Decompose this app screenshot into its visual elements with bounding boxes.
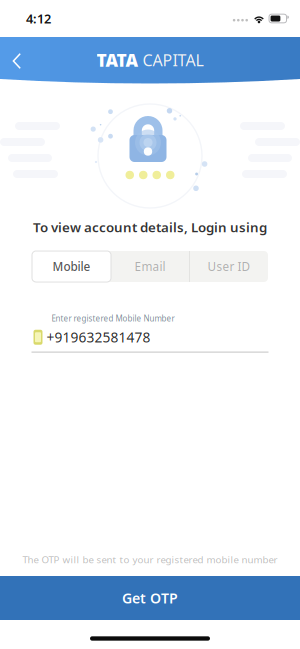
staticText: User ID <box>207 258 250 274</box>
button[interactable]: Mobile <box>32 251 111 282</box>
staticText: 4:12 <box>26 10 51 27</box>
staticText: TATA <box>96 48 138 71</box>
staticText: Mobile <box>52 258 90 274</box>
staticText: To view account details, Login using <box>33 218 267 236</box>
button[interactable]: Email <box>111 251 189 282</box>
button[interactable]: Get OTP <box>0 576 300 620</box>
staticText: Email <box>134 258 165 274</box>
staticText: Get OTP <box>122 588 178 608</box>
staticText: +919632581478 <box>46 328 150 347</box>
staticText: CAPITAL <box>142 49 203 71</box>
button[interactable]: Back <box>0 40 36 82</box>
staticText: The OTP will be sent to your registered … <box>22 553 277 566</box>
staticText: Enter registered Mobile Number <box>51 313 174 324</box>
button[interactable]: User ID <box>190 251 268 282</box>
